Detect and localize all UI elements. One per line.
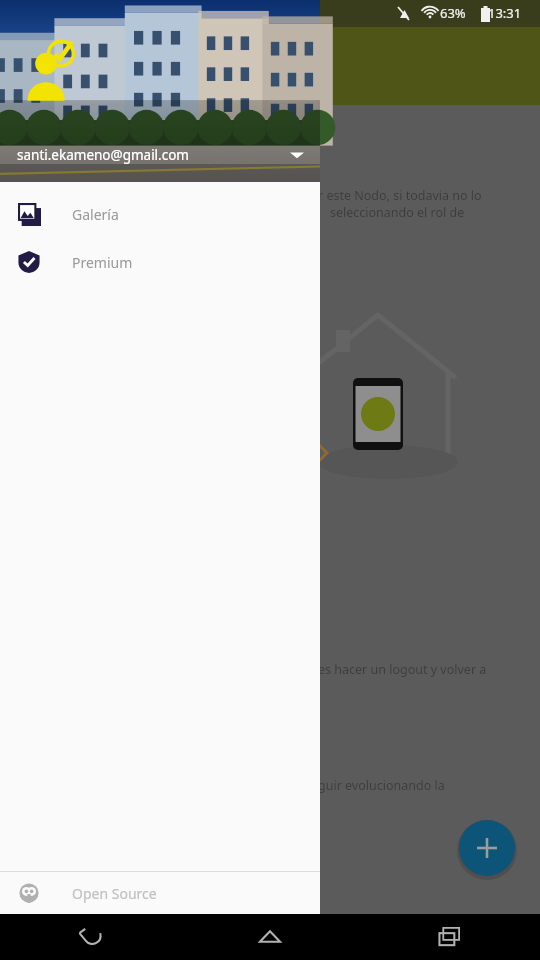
- button[interactable]: Back: [0, 914, 180, 960]
- button[interactable]: santi.ekameno@gmail.com: [0, 0, 320, 182]
- button[interactable]: Add: [459, 820, 515, 876]
- staticText: 63%: [440, 4, 466, 22]
- staticText: santi.ekameno@gmail.com: [17, 146, 189, 164]
- staticText: Open Source: [72, 884, 157, 903]
- button[interactable]: Premium: [0, 238, 320, 286]
- button[interactable]: Galería: [0, 190, 320, 238]
- button[interactable]: Recents: [360, 914, 540, 960]
- staticText: Premium: [72, 253, 133, 272]
- staticText: r este Nodo, si todavia no lo: [318, 187, 482, 204]
- staticText: 13:31: [488, 4, 522, 22]
- staticText: Galería: [72, 205, 119, 224]
- staticText: seleccionando el rol de: [330, 204, 465, 221]
- button[interactable]: Home: [180, 914, 360, 960]
- button[interactable]: Open Source: [0, 872, 320, 914]
- staticText: es hacer un logout y volver a: [318, 661, 487, 678]
- staticText: guir evolucionando la: [318, 777, 445, 794]
